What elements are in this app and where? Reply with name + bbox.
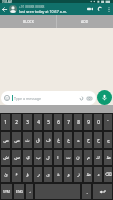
- button[interactable]: 4: [34, 114, 42, 130]
- staticText: ا: [57, 155, 59, 160]
- button[interactable]: ،: [26, 184, 33, 199]
- staticText: ؤ: [26, 172, 29, 177]
- button[interactable]: Back: [0, 3, 9, 15]
- button[interactable]: ئ: [1, 167, 10, 182]
- button[interactable]: ه: [74, 132, 82, 148]
- staticText: SYM: [3, 189, 10, 194]
- button[interactable]: SYM: [1, 184, 12, 199]
- button[interactable]: ء: [12, 167, 21, 182]
- button[interactable]: ج: [104, 132, 112, 148]
- button[interactable]: Voice message: [97, 90, 112, 105]
- button[interactable]: ؤ: [23, 167, 32, 182]
- button[interactable]: BLOCK: [0, 15, 56, 28]
- button[interactable]: `: [104, 114, 112, 130]
- staticText: ض: [3, 138, 9, 143]
- staticText: ENG: [16, 189, 23, 194]
- staticText: ي: [26, 155, 30, 160]
- staticText: ت: [66, 155, 71, 160]
- button[interactable]: ENG: [14, 184, 24, 199]
- staticText: ظ: [86, 172, 91, 177]
- button[interactable]: 6: [54, 114, 62, 130]
- button[interactable]: 0: [94, 114, 102, 130]
- staticText: ع: [67, 138, 70, 143]
- staticText: ،: [29, 189, 31, 194]
- button[interactable]: ة: [54, 167, 62, 182]
- staticText: BLOCK: [23, 19, 34, 24]
- button[interactable]: ث: [23, 132, 32, 148]
- button[interactable]: ظ: [84, 167, 92, 182]
- button[interactable]: ز: [74, 167, 82, 182]
- button[interactable]: ي: [23, 150, 32, 165]
- staticText: .: [86, 189, 88, 195]
- staticText: د: [97, 172, 100, 177]
- button[interactable]: ض: [1, 132, 10, 148]
- button[interactable]: ب: [34, 150, 42, 165]
- button[interactable]: ش: [1, 150, 10, 165]
- staticText: 5: [47, 119, 50, 125]
- button[interactable]: Enter: [93, 184, 112, 199]
- staticText: ص: [14, 138, 20, 143]
- staticText: ب: [36, 155, 41, 160]
- button[interactable]: .: [82, 184, 91, 199]
- staticText: ADD: [81, 19, 89, 24]
- staticText: `: [107, 119, 109, 125]
- staticText: ج: [107, 138, 110, 143]
- button[interactable]: 5: [44, 114, 52, 130]
- button[interactable]: س: [12, 150, 21, 165]
- staticText: ش: [3, 155, 9, 160]
- staticText: 9: [87, 119, 90, 125]
- button[interactable]: 9: [84, 114, 92, 130]
- staticText: last seen today at 10:57 a.m.: [19, 9, 67, 14]
- staticText: م: [87, 155, 90, 160]
- button[interactable]: Type a message: [1, 91, 96, 105]
- button[interactable]: More options: [105, 3, 113, 15]
- button[interactable]: ت: [64, 150, 72, 165]
- staticText: ن: [76, 155, 80, 160]
- button[interactable]: Video call: [85, 3, 95, 15]
- button[interactable]: ⌫: [104, 167, 112, 182]
- button[interactable]: غ: [54, 132, 62, 148]
- button[interactable]: 7: [64, 114, 72, 130]
- button[interactable]: 8: [74, 114, 82, 130]
- button[interactable]: ن: [74, 150, 82, 165]
- button[interactable]: ح: [94, 132, 102, 148]
- button[interactable]: ل: [44, 150, 52, 165]
- staticText: 1: [4, 119, 7, 125]
- staticText: ط: [106, 155, 111, 160]
- button[interactable]: ر: [34, 167, 42, 182]
- staticText: ئ: [4, 172, 8, 177]
- button[interactable]: ك: [94, 150, 102, 165]
- button[interactable]: د: [94, 167, 102, 182]
- staticText: 0: [97, 119, 100, 125]
- button[interactable]: ف: [44, 132, 52, 148]
- button[interactable]: م: [84, 150, 92, 165]
- button[interactable]: Call: [95, 3, 105, 15]
- staticText: 4: [37, 119, 40, 125]
- button[interactable]: ق: [34, 132, 42, 148]
- button[interactable]: 3: [23, 114, 32, 130]
- staticText: ى: [46, 172, 50, 177]
- staticText: 7:05 AM: [2, 0, 12, 3]
- staticText: خ: [87, 138, 90, 143]
- button[interactable]: 1: [1, 114, 10, 130]
- button[interactable]: ADD: [57, 15, 113, 28]
- button[interactable]: 2: [12, 114, 21, 130]
- staticText: غ: [57, 138, 60, 143]
- staticText: 3: [26, 119, 29, 125]
- button[interactable]: خ: [84, 132, 92, 148]
- button[interactable]: ى: [44, 167, 52, 182]
- button[interactable]: ط: [104, 150, 112, 165]
- button[interactable]: ع: [64, 132, 72, 148]
- staticText: 6: [57, 119, 60, 125]
- staticText: 7: [67, 119, 70, 125]
- button[interactable]: ا: [54, 150, 62, 165]
- staticText: ة: [57, 172, 60, 177]
- button[interactable]: و: [64, 167, 72, 182]
- staticText: ر: [37, 172, 40, 177]
- staticText: ⌫: [105, 172, 112, 177]
- staticText: و: [67, 172, 70, 177]
- staticText: Type a message: [14, 96, 41, 101]
- staticText: ك: [96, 155, 100, 160]
- button[interactable]: ص: [12, 132, 21, 148]
